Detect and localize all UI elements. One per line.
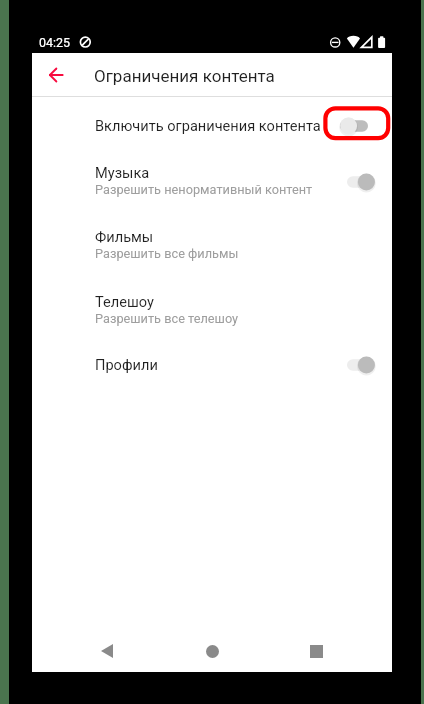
button[interactable]: Back — [40, 59, 72, 91]
staticText: 04:25 — [39, 35, 71, 50]
staticText: Фильмы — [95, 228, 154, 245]
button[interactable]: Профили — [32, 343, 392, 391]
staticText: Телешоу — [95, 293, 154, 310]
staticText: Музыка — [95, 164, 150, 181]
staticText: Разрешить все фильмы — [95, 246, 239, 261]
button[interactable]: Телешоу — [32, 281, 392, 345]
button[interactable]: Включить ограничения контента — [318, 107, 390, 145]
staticText: Профили — [95, 356, 158, 373]
staticText: Ограничения контента — [94, 66, 275, 86]
button[interactable]: Профили — [325, 346, 397, 384]
button[interactable]: Фильмы — [32, 216, 392, 280]
button[interactable]: Музыка — [325, 163, 397, 201]
staticText: Разрешить все телешоу — [95, 311, 239, 326]
button[interactable]: Recent apps — [294, 629, 338, 673]
button[interactable]: Включить ограничения контента — [32, 104, 392, 152]
button[interactable]: Home — [190, 629, 234, 673]
button[interactable]: Back — [85, 629, 129, 673]
button[interactable]: Музыка — [32, 152, 392, 216]
staticText: Включить ограничения контента — [95, 117, 321, 134]
staticText: Разрешить ненормативный контент — [95, 182, 313, 197]
